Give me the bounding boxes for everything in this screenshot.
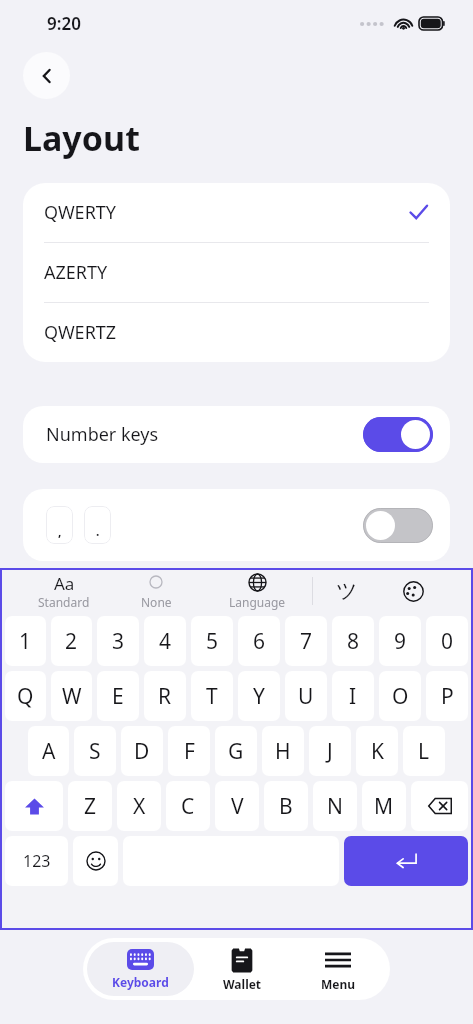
button[interactable] — [363, 508, 433, 543]
button[interactable]: L — [403, 726, 445, 776]
button[interactable]: V — [215, 781, 259, 831]
staticText: 5 — [206, 627, 219, 656]
button[interactable]: None — [110, 568, 202, 614]
staticText: Menu — [321, 976, 356, 992]
button[interactable]: 2 — [51, 616, 92, 666]
staticText: 0 — [441, 627, 454, 656]
button[interactable]: Aa — [18, 568, 110, 614]
staticText: ツ — [336, 578, 358, 604]
staticText: AZERTY — [44, 260, 108, 285]
button[interactable]: Q — [5, 671, 46, 721]
staticText: Language — [229, 594, 286, 610]
staticText: 7 — [300, 627, 313, 656]
button[interactable]: J — [309, 726, 351, 776]
button[interactable]: C — [166, 781, 210, 831]
staticText: I — [349, 682, 357, 711]
button[interactable]: H — [262, 726, 304, 776]
staticText: G — [228, 737, 244, 766]
staticText: 1 — [19, 627, 32, 656]
button[interactable]: I — [332, 671, 374, 721]
button[interactable]: X — [117, 781, 161, 831]
staticText: W — [62, 682, 82, 711]
button[interactable]: 0 — [426, 616, 468, 666]
staticText: , — [58, 523, 62, 539]
staticText: K — [371, 737, 384, 766]
button[interactable]: Keyboard — [87, 942, 194, 996]
staticText: C — [181, 792, 195, 821]
staticText: A — [42, 737, 56, 766]
button[interactable]: 3 — [97, 616, 139, 666]
button[interactable]: G — [215, 726, 257, 776]
button[interactable]: Theme — [381, 568, 445, 614]
staticText: . — [96, 523, 100, 539]
button[interactable]: P — [426, 671, 468, 721]
staticText: F — [184, 737, 195, 766]
staticText: J — [327, 737, 333, 766]
button[interactable]: Kaomoji — [313, 568, 381, 614]
button[interactable]: E — [97, 671, 139, 721]
button[interactable]: Y — [238, 671, 280, 721]
button[interactable]: R — [144, 671, 186, 721]
button[interactable]: 5 — [191, 616, 233, 666]
button[interactable]: B — [264, 781, 308, 831]
staticText: R — [158, 682, 172, 711]
button[interactable]: 4 — [144, 616, 186, 666]
button[interactable]: T — [191, 671, 233, 721]
button[interactable]: Enter — [344, 836, 468, 886]
button[interactable]: S — [74, 726, 116, 776]
button[interactable]: 9 — [379, 616, 421, 666]
button[interactable]: F — [168, 726, 210, 776]
button[interactable]: . — [84, 506, 111, 544]
button[interactable]: K — [356, 726, 398, 776]
button[interactable]: A — [28, 726, 69, 776]
staticText: Wallet — [223, 976, 262, 992]
staticText: Aa — [54, 572, 75, 592]
button[interactable]: Emoji — [73, 836, 118, 886]
button[interactable]: W — [51, 671, 92, 721]
button[interactable]: , — [46, 506, 73, 544]
button[interactable]: O — [379, 671, 421, 721]
staticText: D — [134, 737, 150, 766]
staticText: 8 — [347, 627, 360, 656]
button[interactable]: D — [121, 726, 163, 776]
staticText: QWERTZ — [44, 320, 117, 345]
staticText: 6 — [253, 627, 266, 656]
button[interactable]: Menu — [290, 942, 386, 996]
button[interactable]: Wallet — [194, 942, 290, 996]
button[interactable]: QWERTY — [23, 183, 450, 242]
staticText: E — [112, 682, 124, 711]
staticText: Z — [84, 792, 97, 821]
staticText: 3 — [112, 627, 125, 656]
button[interactable] — [363, 417, 433, 452]
button[interactable]: Shift — [5, 781, 63, 831]
staticText: 9:20 — [47, 12, 81, 35]
button[interactable]: U — [285, 671, 327, 721]
staticText: H — [275, 737, 291, 766]
staticText: S — [89, 737, 101, 766]
staticText: T — [206, 682, 218, 711]
button[interactable]: Z — [68, 781, 112, 831]
button[interactable]: 8 — [332, 616, 374, 666]
staticText: 123 — [23, 850, 51, 872]
staticText: M — [374, 792, 394, 821]
staticText: QWERTY — [44, 200, 117, 225]
button[interactable]: Language — [202, 568, 312, 614]
staticText: N — [327, 792, 343, 821]
button[interactable]: AZERTY — [23, 243, 450, 302]
button[interactable]: Number keys — [23, 406, 450, 463]
staticText: Y — [253, 682, 265, 711]
button[interactable]: N — [313, 781, 357, 831]
button[interactable]: QWERTZ — [23, 303, 450, 362]
staticText: Layout — [23, 115, 140, 161]
button[interactable]: 7 — [285, 616, 327, 666]
staticText: V — [231, 792, 244, 821]
button[interactable]: , — [23, 489, 450, 561]
button[interactable]: Backspace — [411, 781, 468, 831]
button[interactable]: 123 — [5, 836, 68, 886]
staticText: B — [279, 792, 293, 821]
button[interactable]: 1 — [5, 616, 46, 666]
button[interactable]: Back — [23, 52, 70, 99]
button[interactable]: 6 — [238, 616, 280, 666]
button[interactable]: M — [362, 781, 406, 831]
